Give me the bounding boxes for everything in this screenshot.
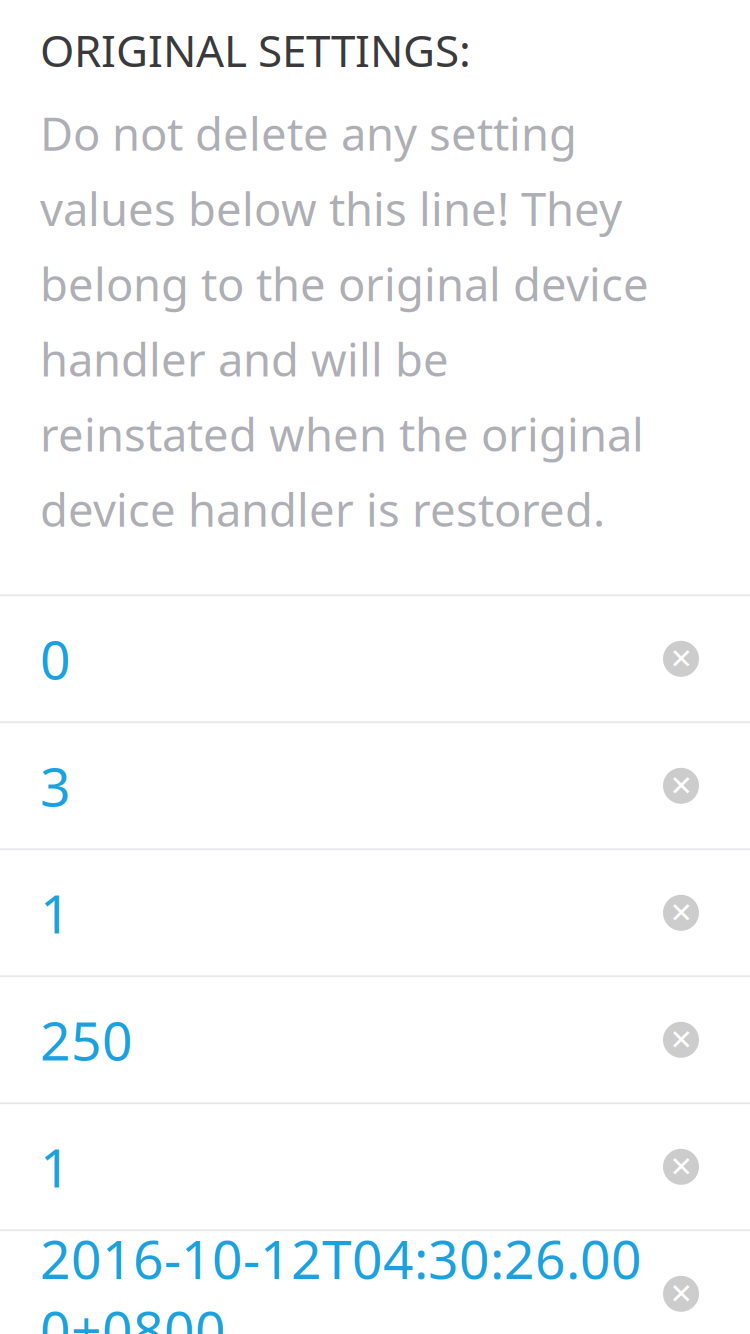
button[interactable]: 1 <box>0 1104 750 1229</box>
staticText: ✕ <box>669 1024 692 1056</box>
button[interactable]: 3 <box>0 723 750 848</box>
staticText: 3 <box>40 750 71 821</box>
staticText: Do not delete any setting values below t… <box>40 103 649 539</box>
staticText: 0 <box>40 623 71 694</box>
button[interactable]: 0 <box>0 596 750 721</box>
staticText: 1 <box>40 877 71 948</box>
staticText: ✕ <box>669 643 692 675</box>
button[interactable]: 2016-10-12T04:30:26.000+0800 <box>0 1231 750 1334</box>
staticText: 1 <box>40 1131 71 1202</box>
button[interactable]: 250 <box>0 977 750 1102</box>
staticText: ORIGINAL SETTINGS: <box>40 21 471 79</box>
staticText: 250 <box>40 1004 133 1075</box>
staticText: ✕ <box>669 897 692 929</box>
button[interactable]: 1 <box>0 850 750 975</box>
staticText: ✕ <box>669 1278 692 1310</box>
staticText: ✕ <box>669 770 692 802</box>
staticText: 2016-10-12T04:30:26.000+0800 <box>40 1223 642 1334</box>
staticText: ✕ <box>669 1151 692 1183</box>
